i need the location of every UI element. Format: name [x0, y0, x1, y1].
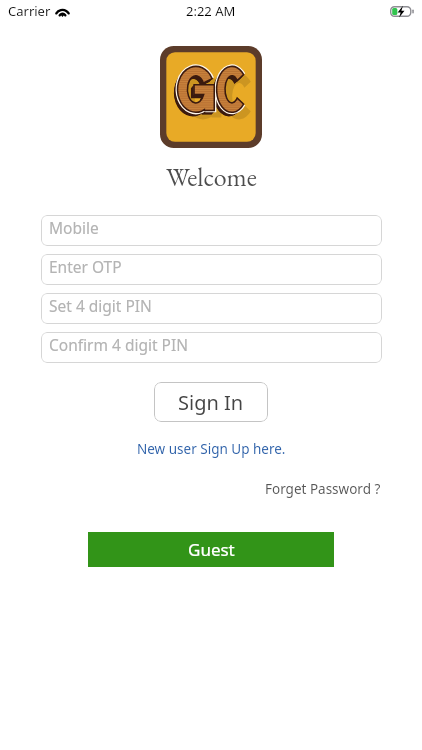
other: GC logo [160, 46, 262, 148]
button[interactable]: Set 4 digit PIN [41, 293, 382, 324]
button[interactable]: Sign In [154, 382, 268, 422]
staticText: Welcome [166, 160, 257, 194]
other: Battery charging [390, 6, 414, 17]
button[interactable]: Forget Password ? [259, 477, 387, 501]
staticText: Confirm 4 digit PIN [49, 334, 189, 355]
staticText: Guest [188, 538, 235, 561]
button[interactable]: Guest [88, 532, 334, 567]
staticText: Sign In [178, 389, 244, 416]
button[interactable]: Mobile [41, 215, 382, 246]
staticText: Mobile [49, 217, 99, 238]
staticText: Forget Password ? [265, 480, 381, 498]
button[interactable]: Confirm 4 digit PIN [41, 332, 382, 363]
button[interactable]: New user Sign Up here. [131, 437, 292, 461]
staticText: Carrier [8, 2, 51, 20]
staticText: Enter OTP [49, 256, 122, 277]
staticText: New user Sign Up here. [137, 440, 286, 458]
staticText: 2:22 AM [186, 2, 236, 20]
other: Wi-Fi [55, 5, 70, 18]
button[interactable]: Enter OTP [41, 254, 382, 285]
staticText: Set 4 digit PIN [49, 295, 152, 316]
